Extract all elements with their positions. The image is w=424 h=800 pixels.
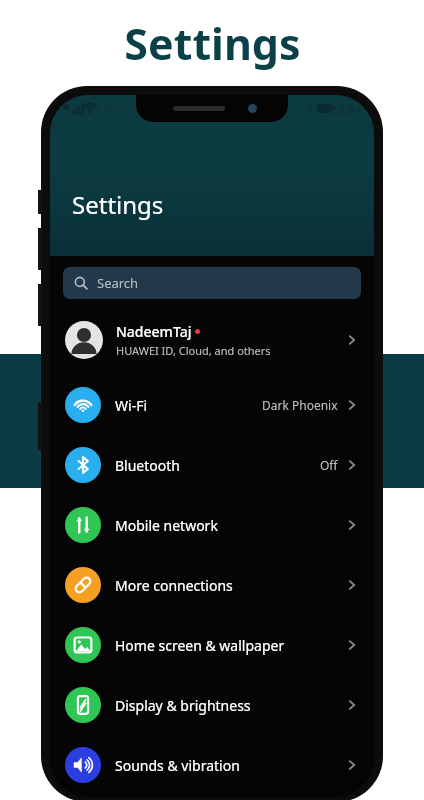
staticText: Settings [72,188,164,221]
other: Open [345,518,359,532]
other: Open [345,578,359,592]
button[interactable]: Bluetooth [50,435,374,495]
staticText: Sounds & vibration [115,756,240,775]
button[interactable]: NadeemTaj [50,311,374,369]
staticText: Dark Phoenix [262,397,338,413]
other: Open [345,698,359,712]
button[interactable]: Mobile network [50,495,374,555]
staticText: NadeemTaj [116,322,192,341]
staticText: HUAWEI ID, Cloud, and others [116,343,271,358]
staticText: Mobile network [115,516,218,535]
other: Open [345,398,359,412]
staticText: More connections [115,576,233,595]
staticText: Off [320,457,338,473]
button[interactable]: Sounds & vibration [50,735,374,795]
staticText: Home screen & wallpaper [115,636,285,655]
button[interactable]: Display & brightness [50,675,374,735]
staticText: Search [97,274,139,292]
button[interactable]: Search [63,267,361,299]
staticText: Settings [124,14,301,73]
other: Open [345,333,359,347]
button[interactable]: Home screen & wallpaper [50,615,374,675]
staticText: Bluetooth [115,456,180,475]
staticText: 2:54 [339,101,361,116]
other: Open [345,758,359,772]
button[interactable]: Wi-Fi [50,375,374,435]
other: Open [345,638,359,652]
button[interactable]: More connections [50,555,374,615]
other: Open [345,458,359,472]
staticText: Display & brightness [115,696,251,715]
staticText: % [306,103,314,115]
staticText: Wi-Fi [115,396,148,415]
